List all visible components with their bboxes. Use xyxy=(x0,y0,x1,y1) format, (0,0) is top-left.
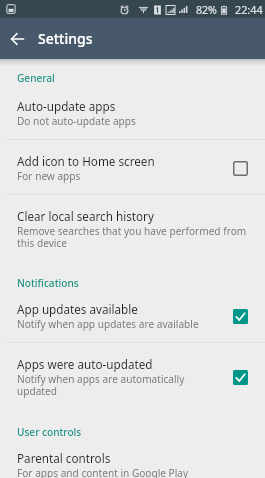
button[interactable]: Unchecked xyxy=(229,157,251,179)
staticText: Remove searches that you have performed … xyxy=(17,224,251,250)
staticText: Clear local search history xyxy=(17,208,154,224)
staticText: Add icon to Home screen xyxy=(17,153,155,169)
button[interactable]: Add icon to Home screen xyxy=(0,140,265,194)
staticText: For new apps xyxy=(17,169,81,183)
staticText: Do not auto-update apps xyxy=(17,114,136,128)
staticText: Notify when app updates are available xyxy=(17,317,199,331)
button[interactable]: Checked xyxy=(229,366,251,388)
staticText: Parental controls xyxy=(17,450,111,466)
staticText: General xyxy=(17,71,55,85)
staticText: 82% xyxy=(196,3,217,17)
button[interactable]: Back xyxy=(0,21,35,56)
staticText: For apps and content in Google Play xyxy=(17,466,189,478)
button[interactable]: Parental controls xyxy=(0,439,265,478)
staticText: App updates available xyxy=(17,301,138,317)
button[interactable]: Clear local search history xyxy=(0,195,265,261)
staticText: 22:44 xyxy=(235,2,263,17)
staticText: Apps were auto-updated xyxy=(17,356,153,372)
button[interactable]: App updates available xyxy=(0,290,265,342)
button[interactable]: Checked xyxy=(229,305,251,327)
staticText: User controls xyxy=(17,425,82,439)
staticText: Notifications xyxy=(17,276,79,290)
button[interactable]: Apps were auto-updated xyxy=(0,343,265,409)
staticText: Auto-update apps xyxy=(17,98,116,114)
button[interactable]: Auto-update apps xyxy=(0,85,265,139)
staticText: Settings xyxy=(38,29,93,48)
staticText: Notify when apps are automatically updat… xyxy=(17,372,221,398)
